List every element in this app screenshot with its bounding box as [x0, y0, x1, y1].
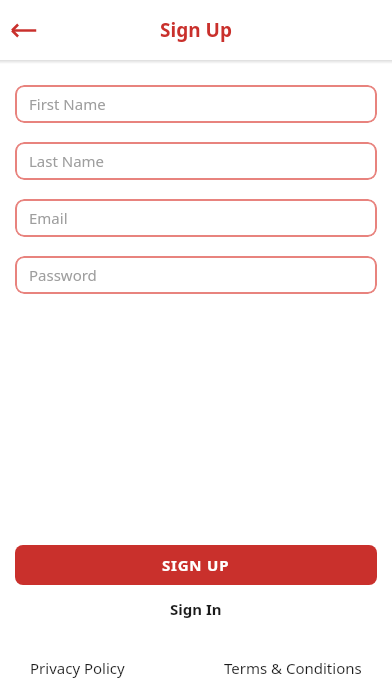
staticText: Terms & Conditions — [224, 658, 362, 678]
staticText: First Name — [29, 94, 106, 114]
staticText: Last Name — [29, 151, 105, 171]
staticText: Privacy Policy — [30, 658, 125, 678]
staticText: Password — [29, 265, 97, 285]
button[interactable]: First Name — [15, 85, 377, 123]
button[interactable]: Password — [15, 256, 377, 294]
button[interactable]: Terms & Conditions — [216, 652, 370, 684]
button[interactable]: Privacy Policy — [22, 652, 133, 684]
button[interactable]: SIGN UP — [15, 545, 377, 585]
staticText: Email — [29, 208, 68, 228]
button[interactable]: Email — [15, 199, 377, 237]
button[interactable]: Sign In — [158, 594, 234, 624]
button[interactable]: Back — [5, 11, 43, 49]
staticText: SIGN UP — [162, 555, 230, 575]
staticText: Sign In — [170, 599, 222, 619]
staticText: Sign Up — [0, 17, 392, 43]
button[interactable]: Last Name — [15, 142, 377, 180]
